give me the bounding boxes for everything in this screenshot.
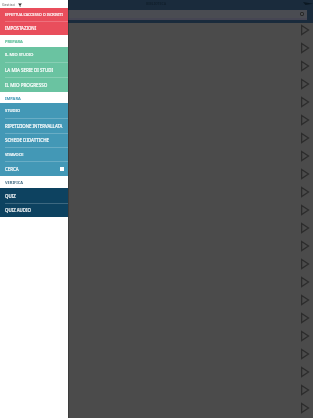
button[interactable]: Play: [301, 61, 309, 71]
button[interactable]: IMPOSTAZIONI: [0, 21, 68, 35]
staticText: IL MIO STUDIO: [5, 52, 34, 57]
button[interactable]: Play: [301, 79, 309, 89]
button[interactable]: Play: [301, 25, 309, 35]
button[interactable]: Play: [301, 349, 309, 359]
button[interactable]: Play: [301, 331, 309, 341]
button[interactable]: Play: [301, 205, 309, 215]
button[interactable]: Search: [0, 10, 307, 18]
button[interactable]: Clear search: [300, 12, 304, 16]
button[interactable]: SCHEDE DIDATTICHE: [0, 133, 68, 147]
staticText: EFFETTUA L'ACCESSO O ISCRIVITI: [5, 12, 63, 17]
button[interactable]: EFFETTUA L'ACCESSO O ISCRIVITI: [0, 8, 68, 21]
staticText: LA MIA SERIE DI STUDI: [5, 67, 54, 73]
staticText: VERIFICA: [5, 180, 24, 185]
button[interactable]: QUIZ AUDIO: [0, 203, 68, 217]
staticText: Gestisci: [2, 2, 16, 7]
button[interactable]: QUIZ: [0, 188, 68, 203]
button[interactable]: Play: [301, 133, 309, 143]
button[interactable]: RIPETIZIONE INTERVALLATA: [0, 118, 68, 133]
staticText: BIBLIOTECA: [146, 1, 167, 6]
button[interactable]: Play: [301, 385, 309, 395]
button[interactable]: Gestisci: [2, 2, 22, 7]
button[interactable]: STUDIO: [0, 103, 68, 118]
button[interactable]: Play: [301, 277, 309, 287]
button[interactable]: Play: [301, 403, 309, 413]
staticText: CERCA: [5, 166, 19, 172]
button[interactable]: Play: [301, 187, 309, 197]
staticText: IL MIO PROGRESSO: [5, 82, 48, 88]
staticText: SCHEDE DIDATTICHE: [5, 137, 49, 143]
staticText: VIVAVOCE: [5, 152, 24, 157]
staticText: QUIZ: [5, 193, 16, 199]
button[interactable]: Play: [301, 115, 309, 125]
button[interactable]: LA MIA SERIE DI STUDI: [0, 62, 68, 77]
staticText: IMPARA: [5, 96, 21, 101]
staticText: PREPARA: [5, 39, 23, 44]
button[interactable]: Play: [301, 313, 309, 323]
button[interactable]: IL MIO PROGRESSO: [0, 77, 68, 92]
staticText: IMPOSTAZIONI: [5, 25, 37, 31]
button[interactable]: Play: [301, 259, 309, 269]
button[interactable]: Play: [301, 97, 309, 107]
button[interactable]: Play: [301, 169, 309, 179]
button[interactable]: IL MIO STUDIO: [0, 47, 68, 62]
button[interactable]: VIVAVOCE: [0, 147, 68, 161]
button[interactable]: Play: [301, 367, 309, 377]
staticText: RIPETIZIONE INTERVALLATA: [5, 123, 63, 129]
staticText: STUDIO: [5, 108, 21, 114]
button[interactable]: CERCA: [0, 161, 68, 176]
staticText: QUIZ AUDIO: [5, 207, 31, 213]
button[interactable]: More options: [303, 2, 313, 5]
button[interactable]: Play: [301, 151, 309, 161]
button[interactable]: Play: [301, 241, 309, 251]
button[interactable]: Play: [301, 43, 309, 53]
button[interactable]: Play: [301, 295, 309, 305]
button[interactable]: Play: [301, 223, 309, 233]
